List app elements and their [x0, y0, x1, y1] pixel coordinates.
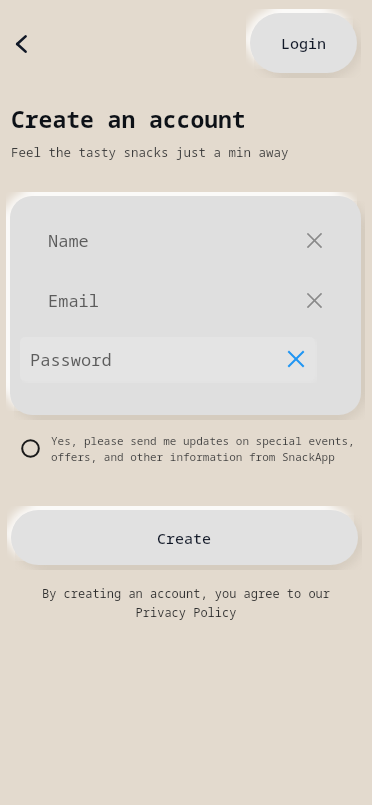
staticText: Yes, please send me updates on special e… — [51, 433, 358, 464]
staticText: Email — [48, 289, 99, 312]
button[interactable]: Name — [38, 218, 333, 262]
button[interactable]: Email — [38, 278, 333, 322]
staticText: Create — [157, 528, 212, 548]
button[interactable]: Password — [20, 337, 315, 381]
staticText: By creating an account, you agree to our… — [40, 585, 332, 620]
button[interactable]: Create — [11, 510, 358, 565]
button[interactable]: Back — [4, 26, 40, 62]
button[interactable]: Yes, please send me updates on special e… — [14, 432, 358, 464]
staticText: Feel the tasty snacks just a min away — [11, 144, 289, 161]
staticText: Create an account — [11, 103, 246, 134]
button[interactable]: Login — [250, 13, 357, 73]
staticText: Name — [48, 229, 89, 252]
staticText: Password — [30, 348, 112, 371]
staticText: Login — [281, 33, 327, 53]
